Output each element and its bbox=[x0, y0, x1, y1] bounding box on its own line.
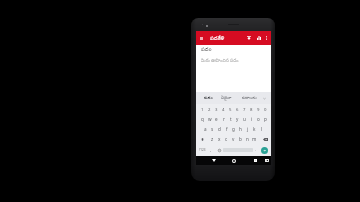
button[interactable]: i bbox=[248, 114, 255, 124]
staticText: ఏదైనా bbox=[221, 95, 232, 101]
staticText: m bbox=[252, 136, 257, 142]
button[interactable]: p bbox=[262, 114, 269, 124]
staticText: v bbox=[232, 136, 235, 142]
button[interactable]: 2 bbox=[206, 104, 213, 114]
button[interactable]: Menu bbox=[263, 156, 271, 165]
staticText: పదం bbox=[201, 46, 212, 53]
button[interactable]: More options bbox=[264, 31, 269, 45]
staticText: . bbox=[255, 147, 257, 153]
button[interactable]: Open navigation drawer bbox=[197, 31, 205, 45]
button[interactable]: , bbox=[207, 144, 215, 156]
staticText: n bbox=[246, 136, 249, 142]
staticText: 7 bbox=[243, 106, 246, 112]
button[interactable]: 7 bbox=[241, 104, 248, 114]
button[interactable]: Download bbox=[245, 31, 252, 45]
button[interactable]: a bbox=[202, 124, 209, 134]
button[interactable]: ?123 bbox=[198, 144, 207, 156]
staticText: g bbox=[232, 126, 235, 132]
staticText: 6 bbox=[236, 106, 239, 112]
staticText: l bbox=[261, 126, 263, 132]
button[interactable]: y bbox=[234, 114, 241, 124]
button[interactable]: m bbox=[251, 134, 258, 144]
button[interactable]: r bbox=[220, 114, 227, 124]
staticText: 3 bbox=[215, 106, 218, 112]
button[interactable]: Statistics bbox=[255, 31, 262, 45]
button[interactable]: l bbox=[258, 124, 265, 134]
button[interactable]: పదం bbox=[199, 92, 217, 104]
staticText: 0 bbox=[264, 106, 267, 112]
button[interactable]: e bbox=[213, 114, 220, 124]
staticText: పదాలను bbox=[242, 95, 257, 101]
staticText: r bbox=[223, 116, 225, 122]
button[interactable]: More suggestions bbox=[261, 92, 268, 104]
button[interactable]: 3 bbox=[213, 104, 220, 114]
staticText: s bbox=[211, 126, 214, 132]
button[interactable]: h bbox=[237, 124, 244, 134]
staticText: 2 bbox=[208, 106, 211, 112]
staticText: a bbox=[204, 126, 207, 132]
button[interactable]: Emoji bbox=[215, 144, 223, 156]
button[interactable]: Shift bbox=[198, 134, 209, 144]
button[interactable]: . bbox=[253, 144, 259, 156]
button[interactable]: w bbox=[206, 114, 213, 124]
button[interactable]: g bbox=[230, 124, 237, 134]
staticText: మీరు ఊహించిన పదం bbox=[201, 57, 239, 64]
staticText: t bbox=[230, 116, 232, 122]
staticText: 4 bbox=[222, 106, 225, 112]
staticText: పదం bbox=[204, 95, 213, 101]
button[interactable]: Back bbox=[210, 156, 218, 165]
staticText: i bbox=[251, 116, 253, 122]
button[interactable]: z bbox=[209, 134, 216, 144]
staticText: 1 bbox=[201, 106, 204, 112]
button[interactable]: s bbox=[209, 124, 216, 134]
staticText: ?123 bbox=[199, 148, 206, 152]
button[interactable]: 8 bbox=[248, 104, 255, 114]
button[interactable]: x bbox=[216, 134, 223, 144]
button[interactable]: 1 bbox=[198, 104, 206, 114]
button[interactable]: 4 bbox=[220, 104, 227, 114]
button[interactable]: 5 bbox=[227, 104, 234, 114]
button[interactable]: 9 bbox=[255, 104, 262, 114]
staticText: k bbox=[253, 126, 256, 132]
staticText: p bbox=[264, 116, 267, 122]
button[interactable]: v bbox=[230, 134, 237, 144]
button[interactable]: Recent apps bbox=[251, 156, 259, 165]
button[interactable]: c bbox=[223, 134, 230, 144]
button[interactable]: q bbox=[198, 114, 206, 124]
staticText: c bbox=[225, 136, 228, 142]
button[interactable]: b bbox=[237, 134, 244, 144]
button[interactable]: k bbox=[251, 124, 258, 134]
staticText: d bbox=[218, 126, 221, 132]
staticText: 9 bbox=[257, 106, 260, 112]
button[interactable]: పదాలను bbox=[240, 92, 258, 104]
staticText: y bbox=[236, 116, 239, 122]
button[interactable]: ఏదైనా bbox=[217, 92, 235, 104]
staticText: q bbox=[201, 116, 204, 122]
button[interactable]: j bbox=[244, 124, 251, 134]
staticText: f bbox=[226, 126, 228, 132]
staticText: 8 bbox=[250, 106, 253, 112]
button[interactable]: d bbox=[216, 124, 223, 134]
button[interactable]: Home bbox=[230, 156, 238, 165]
button[interactable]: n bbox=[244, 134, 251, 144]
button[interactable]: u bbox=[241, 114, 248, 124]
button[interactable]: 0 bbox=[262, 104, 269, 114]
staticText: w bbox=[208, 116, 212, 122]
button[interactable]: Enter bbox=[259, 144, 269, 156]
button[interactable]: 6 bbox=[234, 104, 241, 114]
staticText: x bbox=[218, 136, 221, 142]
button[interactable]: o bbox=[255, 114, 262, 124]
staticText: , bbox=[210, 147, 212, 153]
staticText: 5 bbox=[229, 106, 232, 112]
button[interactable]: t bbox=[227, 114, 234, 124]
button[interactable]: f bbox=[223, 124, 230, 134]
staticText: z bbox=[211, 136, 214, 142]
staticText: j bbox=[247, 126, 249, 132]
button[interactable]: Backspace bbox=[258, 134, 269, 144]
staticText: e bbox=[215, 116, 218, 122]
staticText: h bbox=[239, 126, 242, 132]
staticText: u bbox=[243, 116, 246, 122]
staticText: o bbox=[257, 116, 260, 122]
staticText: b bbox=[239, 136, 242, 142]
